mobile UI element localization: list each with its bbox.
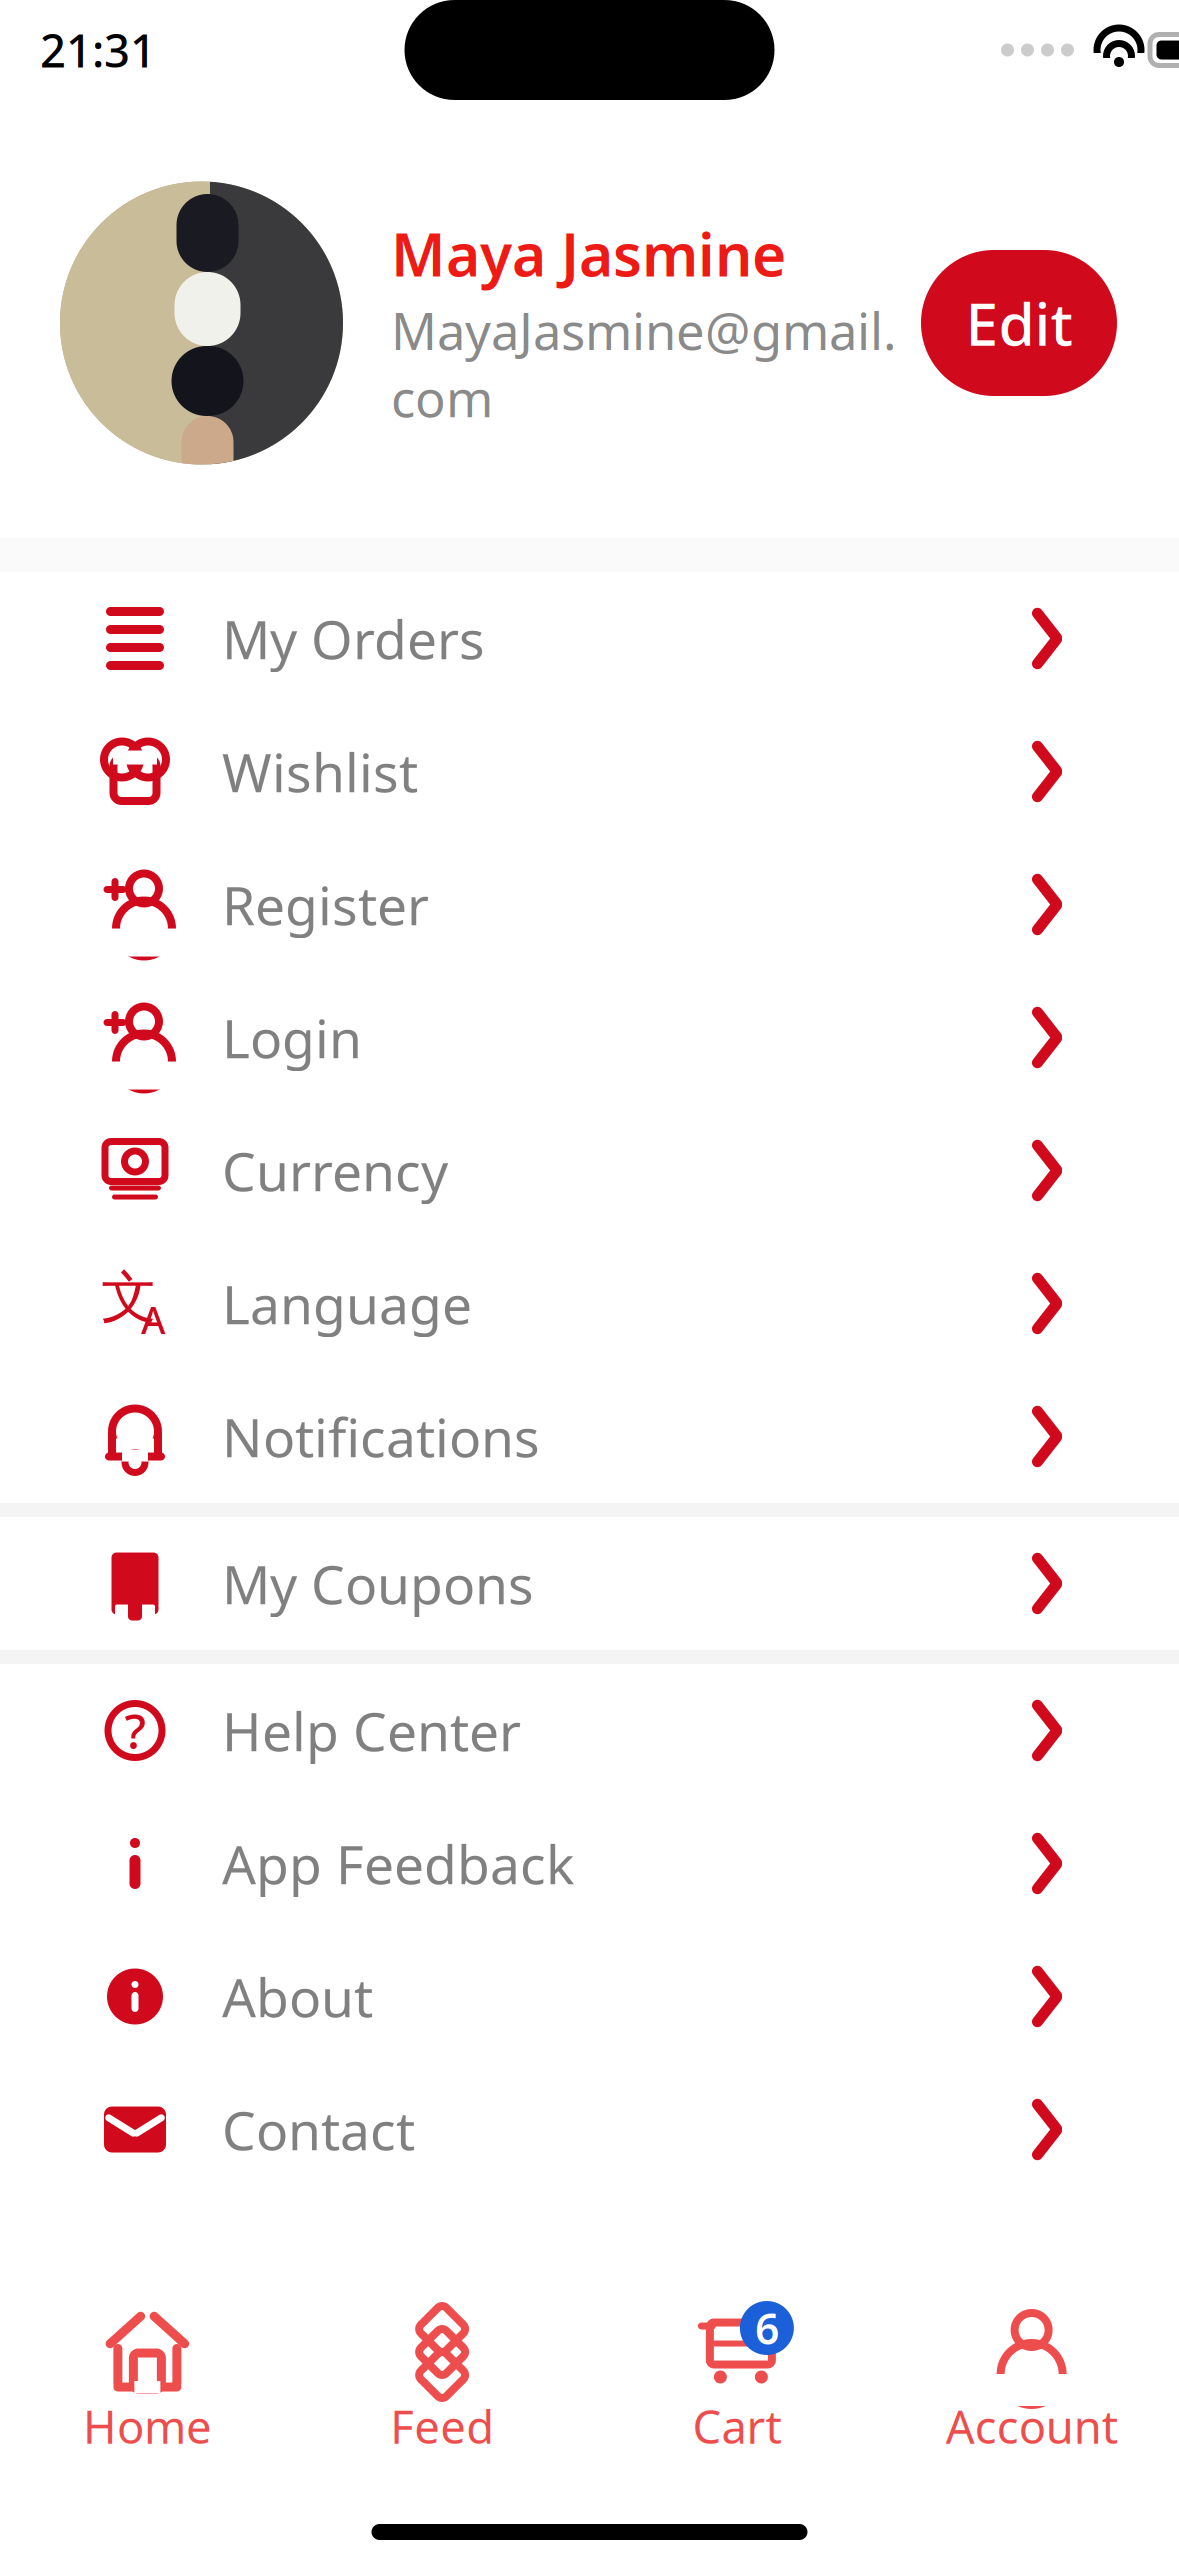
- staticText: A: [141, 1295, 165, 1344]
- staticText: Cart: [692, 2396, 781, 2456]
- staticText: My Orders: [222, 603, 485, 674]
- button[interactable]: Register: [36, 838, 1143, 971]
- button[interactable]: Edit: [921, 250, 1117, 396]
- button[interactable]: Notifications: [36, 1370, 1143, 1503]
- staticText: 文: [101, 1263, 157, 1332]
- staticText: Home: [83, 2396, 212, 2456]
- staticText: Edit: [965, 284, 1072, 362]
- staticText: Login: [222, 1002, 362, 1073]
- staticText: Help Center: [222, 1695, 521, 1766]
- staticText: My Coupons: [222, 1548, 534, 1619]
- button[interactable]: My Coupons: [36, 1517, 1143, 1650]
- staticText: 21:31: [40, 20, 156, 80]
- button[interactable]: App Feedback: [36, 1797, 1143, 1930]
- staticText: Wishlist: [222, 736, 418, 807]
- button[interactable]: ?: [36, 1664, 1143, 1797]
- button[interactable]: 6: [589, 2306, 884, 2464]
- button[interactable]: Account: [884, 2306, 1179, 2464]
- staticText: 6: [755, 2300, 779, 2356]
- button[interactable]: Wishlist: [36, 705, 1143, 838]
- staticText: ?: [124, 1699, 145, 1762]
- button[interactable]: Home: [0, 2306, 295, 2464]
- button[interactable]: My Orders: [36, 572, 1143, 705]
- staticText: Register: [222, 869, 429, 940]
- button[interactable]: 文: [36, 1237, 1143, 1370]
- staticText: About: [222, 1961, 373, 2032]
- staticText: Feed: [390, 2396, 494, 2456]
- staticText: MayaJasmine@gmail.com: [391, 297, 897, 431]
- staticText: Language: [222, 1268, 472, 1339]
- staticText: App Feedback: [222, 1828, 574, 1899]
- staticText: Currency: [222, 1135, 448, 1206]
- staticText: Contact: [222, 2094, 415, 2165]
- staticText: Account: [946, 2396, 1118, 2456]
- button[interactable]: Feed: [295, 2306, 590, 2464]
- button[interactable]: Contact: [36, 2063, 1143, 2196]
- button[interactable]: Currency: [36, 1104, 1143, 1237]
- staticText: Notifications: [222, 1401, 540, 1472]
- button[interactable]: Login: [36, 971, 1143, 1104]
- staticText: Maya Jasmine: [391, 215, 786, 293]
- button[interactable]: About: [36, 1930, 1143, 2063]
